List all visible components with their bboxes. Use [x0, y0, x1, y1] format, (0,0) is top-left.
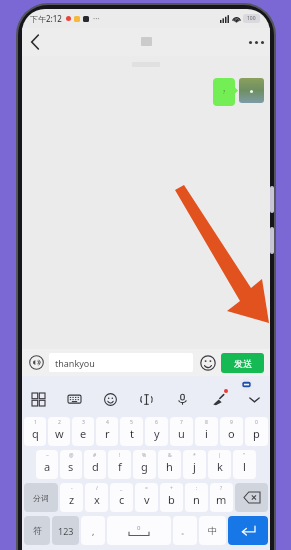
staticText: : [196, 485, 198, 492]
staticText: 中 [208, 525, 217, 536]
staticText: e [80, 426, 87, 441]
button[interactable]: % [133, 450, 156, 479]
button[interactable]: 3 [72, 417, 94, 446]
button[interactable]: 发送 [221, 353, 264, 373]
staticText: 0 [137, 524, 141, 532]
button[interactable]: 5 [120, 417, 143, 446]
button[interactable]: Collapse keyboard [244, 389, 264, 409]
staticText: t [130, 426, 134, 441]
button[interactable]: 。 [173, 516, 197, 545]
staticText: q [32, 426, 39, 441]
button[interactable]: More options [242, 28, 270, 56]
button[interactable]: 9 [220, 417, 243, 446]
staticText: 3 [82, 419, 85, 426]
button[interactable]: - [60, 483, 83, 512]
staticText: 7 [180, 419, 183, 426]
staticText: = [145, 485, 148, 492]
staticText: + [170, 485, 173, 492]
staticText: j [193, 459, 196, 474]
button[interactable]: Enter [228, 516, 268, 545]
button[interactable]: Voice [172, 389, 192, 409]
staticText: n [193, 492, 200, 507]
staticText: h [166, 459, 173, 474]
staticText: # [93, 452, 97, 459]
staticText: a [44, 459, 51, 474]
staticText: ? [223, 89, 226, 96]
staticText: 符 [33, 525, 42, 536]
staticText: k [217, 459, 223, 474]
button[interactable]: Handwriting [136, 389, 156, 409]
staticText: v [144, 492, 150, 507]
staticText: s [68, 459, 74, 474]
button[interactable]: @ [60, 450, 82, 479]
button[interactable]: Back [22, 29, 48, 55]
staticText: % [142, 452, 147, 459]
button[interactable]: Voice input [28, 354, 45, 371]
staticText: 8 [205, 419, 208, 426]
staticText: ~ [46, 452, 49, 459]
button[interactable]: 8 [195, 417, 218, 446]
staticText: 4 [106, 419, 109, 426]
staticText: m [216, 492, 227, 507]
staticText: 9 [230, 419, 233, 426]
button[interactable]: # [84, 450, 106, 479]
button[interactable]: Assistant [239, 377, 253, 391]
staticText: u [178, 426, 185, 441]
button[interactable]: thankyou [49, 353, 193, 372]
staticText: o [228, 426, 235, 441]
staticText: y [154, 426, 160, 441]
button[interactable]: " [233, 450, 256, 479]
staticText: d [92, 459, 99, 474]
button[interactable]: 分词 [24, 483, 58, 512]
button[interactable]: _ [110, 483, 133, 512]
button[interactable]: | [208, 450, 231, 479]
button[interactable]: 2 [48, 417, 70, 446]
button[interactable]: / [85, 483, 108, 512]
button[interactable]: 4 [96, 417, 118, 446]
staticText: @ [69, 452, 74, 459]
button[interactable]: Settings [208, 389, 228, 409]
button[interactable]: Apps [28, 389, 48, 409]
staticText: / [96, 485, 98, 492]
staticText: l [243, 459, 246, 474]
button[interactable]: 0 [245, 417, 268, 446]
staticText: 下午2:12 [30, 13, 62, 24]
button[interactable]: & [158, 450, 181, 479]
button[interactable]: ! [108, 450, 131, 479]
button[interactable]: : [185, 483, 208, 512]
button[interactable]: Emoji [100, 389, 120, 409]
staticText: " [243, 452, 246, 459]
button[interactable]: ~ [36, 450, 58, 479]
staticText: 。 [181, 526, 189, 536]
staticText: 6 [155, 419, 158, 426]
staticText: _ [120, 485, 123, 492]
button[interactable]: ? [210, 483, 233, 512]
button[interactable]: Avatar [239, 78, 264, 103]
button[interactable]: Emoji [198, 353, 217, 372]
button[interactable]: , [81, 516, 105, 545]
staticText: f [118, 459, 122, 474]
button[interactable]: Backspace [235, 483, 268, 512]
button[interactable]: + [160, 483, 183, 512]
button[interactable]: 7 [170, 417, 193, 446]
button[interactable]: Space [107, 516, 171, 545]
button[interactable]: = [135, 483, 158, 512]
button[interactable]: 中 [199, 516, 226, 545]
staticText: ? [220, 485, 223, 492]
button[interactable]: * [183, 450, 206, 479]
staticText: 0 [255, 419, 258, 426]
button[interactable]: 1 [24, 417, 46, 446]
button[interactable]: ? [213, 78, 235, 106]
staticText: p [253, 426, 260, 441]
button[interactable]: Keyboard [64, 389, 84, 409]
staticText: b [168, 492, 175, 507]
staticText: 5 [130, 419, 133, 426]
staticText: 2 [58, 419, 61, 426]
button[interactable]: 符 [24, 516, 50, 545]
button[interactable]: 123 [52, 516, 79, 545]
staticText: z [69, 492, 75, 507]
staticText: c [119, 492, 125, 507]
button[interactable]: 6 [145, 417, 168, 446]
staticText: w [55, 426, 64, 441]
staticText: 发送 [234, 358, 252, 369]
